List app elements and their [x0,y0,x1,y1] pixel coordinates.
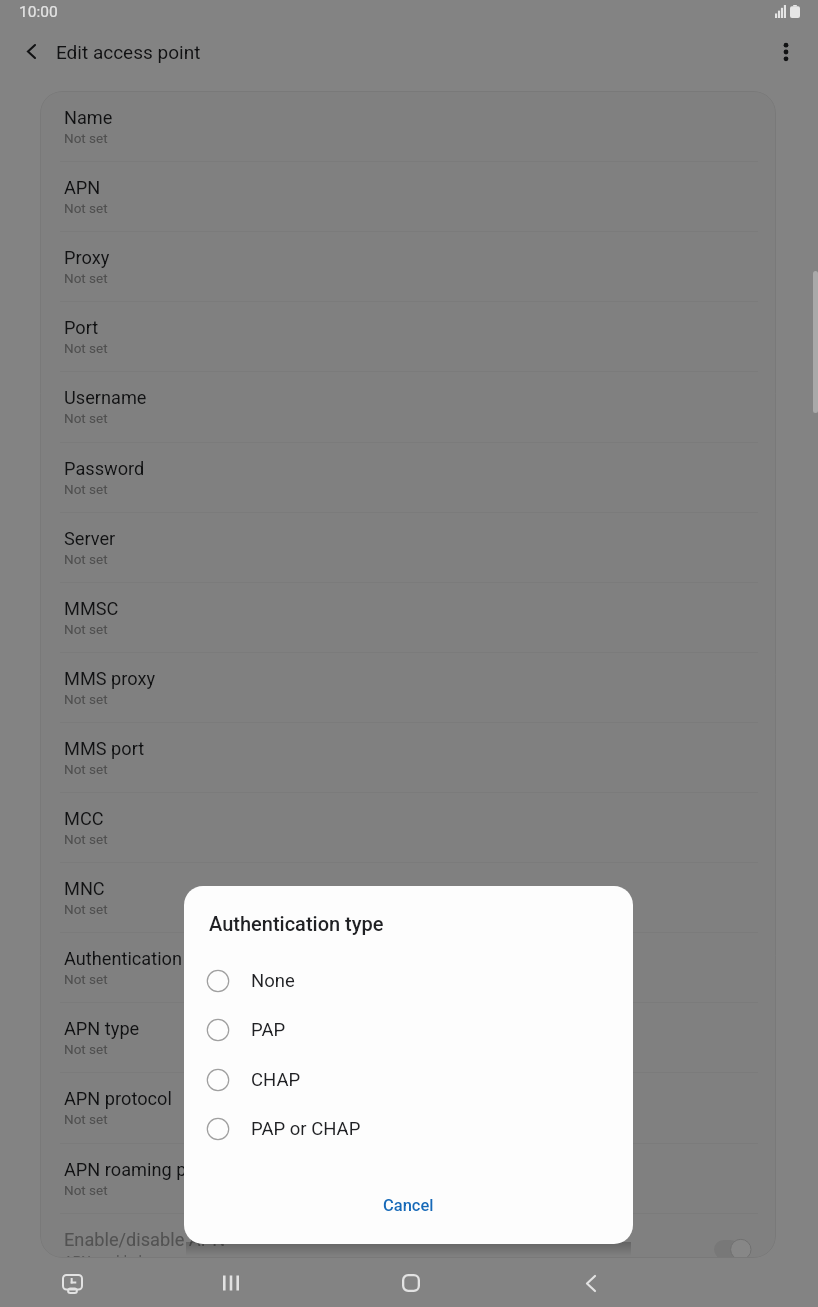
staticText: Not set [64,200,108,216]
staticText: Edit access point [56,41,201,63]
staticText: Not set [64,621,108,637]
button[interactable]: Username [40,371,776,441]
staticText: Not set [64,481,108,497]
button[interactable]: Recents [209,1261,253,1305]
staticText: None [251,970,295,992]
staticText: Not set [64,410,108,426]
staticText: APN [64,177,101,198]
button[interactable]: APN roaming protocol [40,1143,776,1213]
staticText: Name [64,107,113,128]
staticText: MNC [64,878,105,899]
staticText: Not set [64,831,108,847]
staticText: Not set [64,551,108,567]
staticText: CHAP [251,1069,301,1091]
button[interactable]: Cancel [367,1186,450,1225]
staticText: Cancel [383,1196,434,1215]
button[interactable]: MMS proxy [40,652,776,722]
button[interactable]: None [184,956,633,1006]
button[interactable]: APN type [40,1002,776,1072]
staticText: Not set [64,1041,108,1057]
button[interactable]: Back [569,1261,613,1305]
staticText: Not set [64,971,108,987]
button[interactable]: APN enabled [714,1239,751,1258]
button[interactable]: More options [764,30,808,74]
staticText: Not set [64,130,108,146]
staticText: MMS port [64,738,145,759]
button[interactable]: MCC [40,792,776,862]
button[interactable]: MNC [40,862,776,932]
staticText: Not set [64,1182,108,1198]
staticText: APN roaming protocol [64,1159,244,1180]
button[interactable]: Back [9,29,53,73]
staticText: MMSC [64,598,119,619]
staticText: Password [64,458,145,479]
staticText: Not set [64,901,108,917]
staticText: MMS proxy [64,668,156,689]
staticText: PAP [251,1019,286,1041]
button[interactable]: Home [389,1261,433,1305]
button[interactable]: Enable/disable APN [40,1213,776,1258]
staticText: Not set [64,270,108,286]
button[interactable]: MMS port [40,722,776,792]
staticText: APN enabled [64,1252,142,1258]
staticText: Not set [64,1111,108,1127]
button[interactable]: PAP or CHAP [184,1104,633,1154]
staticText: Proxy [64,247,110,268]
button[interactable]: Server [40,512,776,582]
staticText: Not set [64,691,108,707]
staticText: Authentication type [209,912,384,935]
staticText: 10:00 [19,3,58,21]
button[interactable]: PAP [184,1005,633,1055]
staticText: APN protocol [64,1088,172,1109]
button[interactable]: APN [40,161,776,231]
button[interactable]: Show keyboard [50,1261,94,1305]
staticText: Not set [64,761,108,777]
button[interactable]: MMSC [40,582,776,652]
button[interactable]: CHAP [184,1055,633,1105]
button[interactable]: APN protocol [40,1072,776,1142]
button[interactable]: Proxy [40,231,776,301]
staticText: PAP or CHAP [251,1118,361,1140]
staticText: Not set [64,340,108,356]
staticText: Port [64,317,99,338]
staticText: Username [64,387,147,408]
staticText: Enable/disable APN [64,1229,226,1250]
button[interactable]: Password [40,442,776,512]
button[interactable]: Name [40,91,776,161]
staticText: MCC [64,808,104,829]
staticText: APN type [64,1018,140,1039]
button[interactable]: Authentication type [40,932,776,1002]
staticText: Authentication type [64,948,221,969]
staticText: Server [64,528,116,549]
button[interactable]: Port [40,301,776,371]
